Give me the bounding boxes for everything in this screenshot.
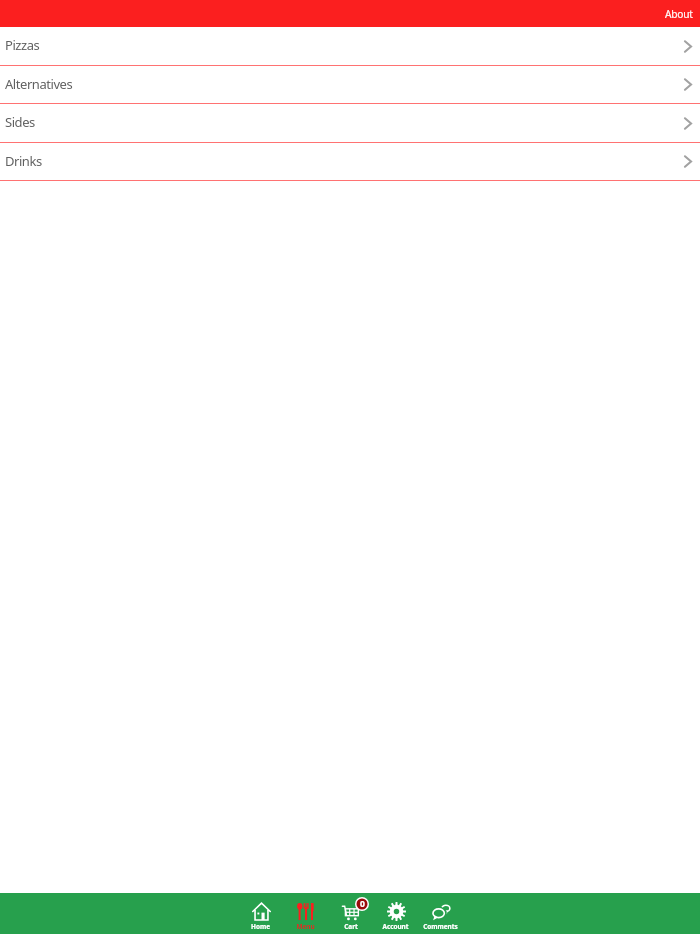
other: Open Pizzas: [684, 40, 692, 53]
button[interactable]: Account: [373, 893, 418, 934]
staticText: Menu: [296, 922, 315, 931]
button[interactable]: About: [655, 3, 700, 25]
button[interactable]: Alternatives: [0, 66, 700, 104]
staticText: 0: [360, 898, 365, 910]
staticText: Drinks: [5, 152, 42, 170]
button[interactable]: Sides: [0, 104, 700, 143]
button[interactable]: Pizzas: [0, 27, 700, 66]
staticText: Account: [382, 922, 409, 931]
staticText: About: [665, 7, 693, 21]
staticText: Sides: [5, 113, 35, 131]
button[interactable]: Drinks: [0, 143, 700, 181]
staticText: Home: [251, 922, 270, 931]
staticText: Alternatives: [5, 75, 73, 93]
other: Open Alternatives: [684, 78, 692, 91]
button[interactable]: Home: [238, 893, 283, 934]
other: Open Drinks: [684, 155, 692, 168]
staticText: Pizzas: [5, 36, 40, 54]
button[interactable]: Comments: [418, 893, 463, 934]
other: Open Sides: [684, 117, 692, 130]
staticText: Cart: [344, 922, 358, 931]
staticText: Comments: [423, 922, 458, 931]
button[interactable]: Cart: [328, 893, 373, 934]
button[interactable]: Menu: [283, 893, 328, 934]
